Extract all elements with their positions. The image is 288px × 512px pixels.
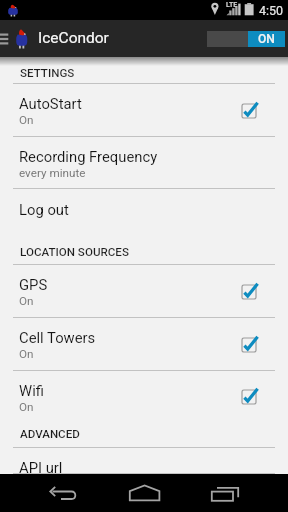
- staticText: Log out: [19, 201, 69, 218]
- button[interactable]: Cell Towers: [0, 318, 288, 371]
- staticText: ADVANCED: [20, 427, 80, 441]
- staticText: 4:50: [259, 3, 284, 18]
- button[interactable]: Wifi: [0, 371, 288, 423]
- staticText: SETTINGS: [20, 66, 75, 80]
- staticText: every minute: [19, 166, 86, 180]
- button[interactable]: API url: [0, 448, 288, 474]
- staticText: On: [19, 347, 34, 361]
- button[interactable]: Recording on/off: [207, 31, 285, 47]
- staticText: https://icecondor.com/v2: [19, 477, 151, 486]
- staticText: AutoStart: [19, 95, 82, 112]
- staticText: Wifi: [19, 382, 44, 399]
- staticText: Cell Towers: [19, 329, 96, 346]
- button[interactable]: AutoStart checkbox: [236, 98, 262, 124]
- button[interactable]: GPS: [0, 265, 288, 318]
- staticText: LTE: [226, 1, 238, 9]
- staticText: On: [19, 400, 34, 414]
- button[interactable]: Open navigation drawer: [0, 20, 13, 57]
- staticText: On: [19, 294, 34, 308]
- staticText: On: [19, 113, 34, 127]
- staticText: LOCATION SOURCES: [20, 245, 129, 259]
- staticText: GPS: [19, 276, 48, 293]
- button[interactable]: Recent apps: [200, 474, 248, 512]
- button[interactable]: Recording Frequency: [0, 137, 288, 189]
- button[interactable]: GPS checkbox: [236, 279, 262, 305]
- staticText: Recording Frequency: [19, 148, 158, 165]
- button[interactable]: Back: [40, 474, 88, 512]
- button[interactable]: Home: [120, 474, 168, 512]
- button[interactable]: AutoStart: [0, 84, 288, 137]
- button[interactable]: Cell Towers checkbox: [236, 332, 262, 358]
- button[interactable]: Log out: [0, 189, 288, 239]
- staticText: ON: [258, 32, 275, 46]
- button[interactable]: Wifi checkbox: [236, 384, 262, 410]
- staticText: API url: [19, 459, 63, 476]
- staticText: IceCondor: [38, 29, 109, 47]
